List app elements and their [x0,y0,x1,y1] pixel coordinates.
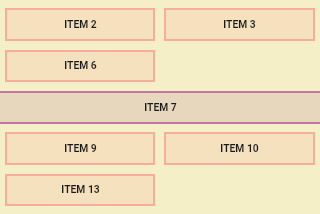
staticText: ITEM 7 [144,101,177,113]
button[interactable]: ITEM 13 [7,176,153,204]
staticText: ITEM 10 [220,142,259,154]
staticText: ITEM 13 [61,183,100,195]
button[interactable]: ITEM 10 [166,134,313,163]
button[interactable]: ITEM 6 [7,52,153,80]
staticText: ITEM 6 [64,59,97,71]
staticText: ITEM 2 [64,18,97,30]
button[interactable]: ITEM 7 [0,93,320,122]
staticText: ITEM 9 [64,142,97,154]
button[interactable]: ITEM 2 [7,10,153,39]
staticText: ITEM 3 [223,18,256,30]
button[interactable]: ITEM 9 [7,134,153,163]
button[interactable]: ITEM 3 [166,10,313,39]
